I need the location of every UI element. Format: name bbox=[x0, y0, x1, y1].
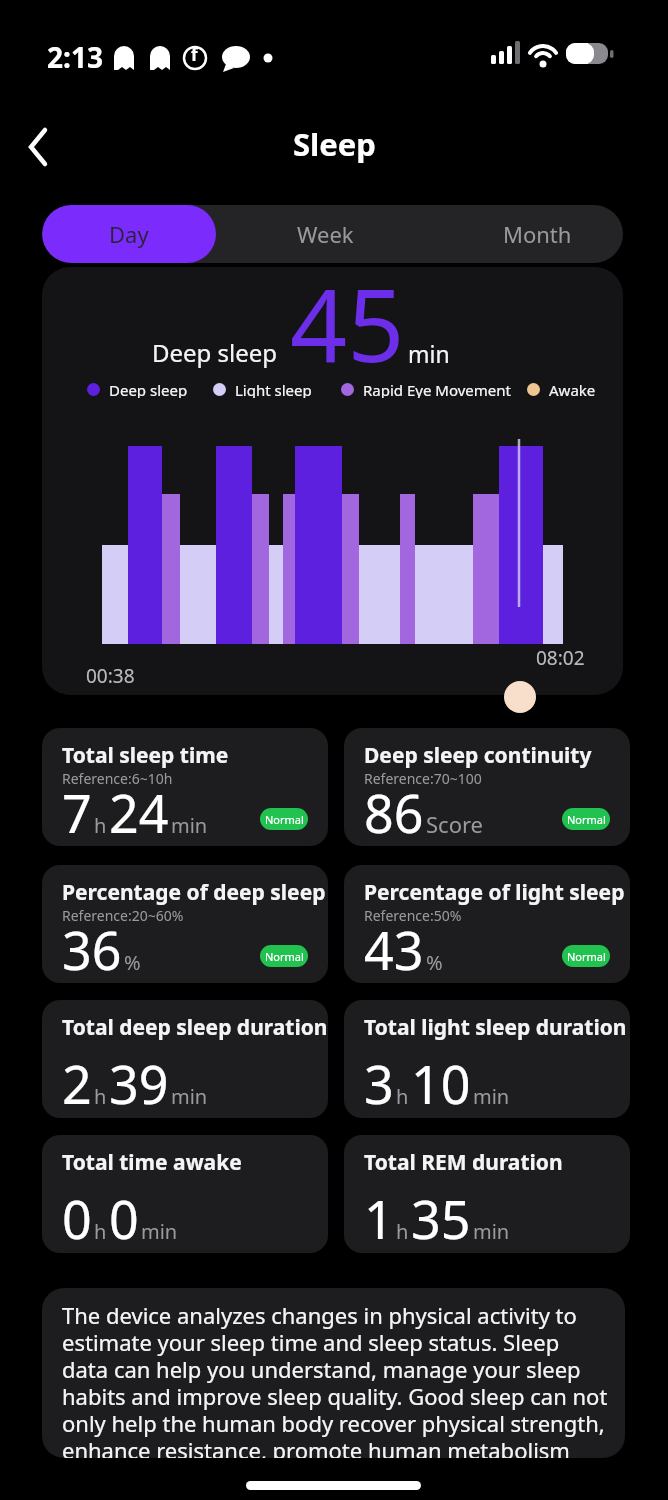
staticText: 3 bbox=[364, 1048, 394, 1118]
staticText: min bbox=[141, 1218, 178, 1245]
staticText: Reference:20~60% bbox=[62, 906, 184, 925]
button[interactable]: Deep sleep bbox=[42, 267, 623, 695]
staticText: Light sleep bbox=[235, 380, 312, 398]
staticText: min bbox=[408, 338, 450, 369]
button[interactable]: Total time awake bbox=[42, 1135, 328, 1253]
staticText: min bbox=[473, 1083, 510, 1110]
button[interactable]: Total REM duration bbox=[344, 1135, 630, 1253]
staticText: 24 bbox=[109, 777, 169, 846]
staticText: Sleep bbox=[293, 123, 376, 163]
button[interactable]: Percentage of light sleep bbox=[344, 865, 630, 983]
button[interactable]: Percentage of deep sleep bbox=[42, 865, 328, 983]
staticText: h bbox=[94, 1218, 107, 1245]
staticText: 0 bbox=[109, 1183, 139, 1253]
staticText: 36 bbox=[62, 914, 122, 983]
staticText: Rapid Eye Movement bbox=[363, 380, 511, 398]
button[interactable] bbox=[10, 120, 66, 176]
button[interactable]: The device analyzes changes in physical … bbox=[42, 1288, 625, 1458]
staticText: Reference:70~100 bbox=[364, 769, 482, 788]
staticText: 2:13 bbox=[47, 38, 103, 76]
button[interactable]: Day bbox=[42, 205, 216, 263]
staticText: 86 bbox=[364, 777, 424, 846]
staticText: Total light sleep duration bbox=[364, 1013, 627, 1042]
staticText: 43 bbox=[364, 914, 424, 983]
staticText: Percentage of deep sleep bbox=[62, 878, 326, 907]
staticText: 7 bbox=[62, 777, 92, 846]
staticText: min bbox=[473, 1218, 510, 1245]
staticText: % bbox=[124, 949, 141, 976]
staticText: % bbox=[426, 949, 443, 976]
staticText: Deep sleep continuity bbox=[364, 741, 592, 770]
staticText: The device analyzes changes in physical … bbox=[62, 1300, 618, 1458]
staticText: 10 bbox=[411, 1048, 471, 1118]
staticText: h bbox=[94, 812, 107, 839]
staticText: Week bbox=[297, 219, 354, 249]
staticText: 0 bbox=[62, 1183, 92, 1253]
staticText: Deep sleep bbox=[152, 336, 278, 369]
staticText: 39 bbox=[109, 1048, 169, 1118]
staticText: Day bbox=[109, 219, 149, 249]
button[interactable]: Week bbox=[230, 205, 420, 263]
staticText: Normal bbox=[265, 812, 304, 827]
staticText: Percentage of light sleep bbox=[364, 878, 625, 907]
staticText: Normal bbox=[265, 949, 304, 964]
staticText: Total REM duration bbox=[364, 1148, 563, 1177]
staticText: 45 bbox=[290, 267, 405, 385]
staticText: 08:02 bbox=[536, 645, 585, 671]
staticText: 2 bbox=[62, 1048, 92, 1118]
staticText: Total deep sleep duration bbox=[62, 1013, 328, 1042]
staticText: Reference:6~10h bbox=[62, 769, 173, 788]
staticText: h bbox=[396, 1218, 409, 1245]
button[interactable]: Total deep sleep duration bbox=[42, 1000, 328, 1118]
staticText: Awake bbox=[549, 380, 596, 398]
staticText: f bbox=[191, 43, 198, 66]
staticText: h bbox=[94, 1083, 107, 1110]
staticText: min bbox=[171, 1083, 208, 1110]
staticText: 1 bbox=[364, 1183, 394, 1253]
staticText: 00:38 bbox=[86, 663, 135, 689]
staticText: h bbox=[396, 1083, 409, 1110]
staticText: Month bbox=[503, 219, 572, 249]
button[interactable]: Deep sleep continuity bbox=[344, 728, 630, 846]
button[interactable]: Total light sleep duration bbox=[344, 1000, 630, 1118]
staticText: Score bbox=[426, 809, 484, 839]
button[interactable]: Month bbox=[449, 205, 623, 263]
button[interactable]: Total sleep time bbox=[42, 728, 328, 846]
staticText: Normal bbox=[567, 949, 606, 964]
staticText: Reference:50% bbox=[364, 906, 462, 925]
staticText: Total time awake bbox=[62, 1148, 242, 1177]
staticText: 35 bbox=[411, 1183, 471, 1253]
staticText: Deep sleep bbox=[109, 380, 188, 398]
button[interactable] bbox=[504, 681, 536, 713]
staticText: min bbox=[171, 812, 208, 839]
staticText: Normal bbox=[567, 812, 606, 827]
staticText: Total sleep time bbox=[62, 741, 229, 770]
